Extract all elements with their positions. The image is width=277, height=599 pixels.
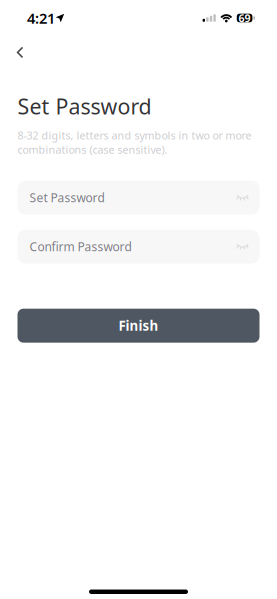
staticText: 8-32 digits, letters and symbols in two … [17,128,251,157]
button[interactable]: Finish [17,309,259,343]
staticText: 69 [239,11,251,25]
button[interactable]: Confirm Password [29,230,131,264]
button[interactable]: Show password [229,181,255,215]
button[interactable]: Set Password [29,181,104,215]
staticText: Confirm Password [29,239,131,255]
button[interactable]: Show password [229,230,255,264]
staticText: Set Password [29,190,104,206]
staticText: Set Password [17,92,151,120]
button[interactable]: Back [17,40,45,64]
staticText: 4:21 [27,8,55,28]
staticText: Finish [118,317,158,334]
